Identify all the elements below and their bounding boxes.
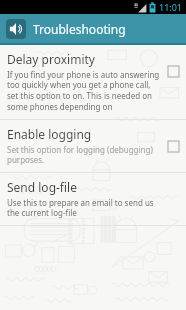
button[interactable]: Toggle Enable logging <box>166 139 180 153</box>
button[interactable]: Send log-file <box>0 173 186 225</box>
staticText: Send log-file <box>7 179 77 195</box>
staticText: 11:01 <box>159 1 183 13</box>
button[interactable]: Toggle Delay proximity <box>166 64 180 78</box>
staticText: Set this option for logging (debugging) … <box>7 144 160 166</box>
button[interactable]: App icon <box>5 18 127 40</box>
staticText: Delay proximity <box>7 51 95 67</box>
button[interactable]: Delay proximity <box>0 45 186 119</box>
button[interactable]: Enable logging <box>0 120 186 172</box>
other: App icon <box>6 19 26 39</box>
staticText: Enable logging <box>7 126 92 142</box>
staticText: Use this to prepare an email to send us … <box>7 197 160 219</box>
staticText: If you find your phone is auto answering… <box>7 69 160 113</box>
staticText: Troubleshooting <box>33 21 126 37</box>
